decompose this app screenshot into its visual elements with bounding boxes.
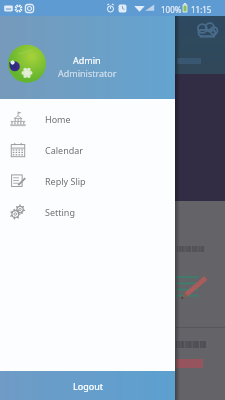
button[interactable]: Setting [0, 196, 175, 227]
button[interactable]: Reply Slip [0, 165, 175, 196]
staticText: Setting [45, 206, 75, 218]
button[interactable]: Home [0, 103, 175, 134]
staticText: Admin [73, 54, 101, 66]
staticText: 11:15 [191, 4, 212, 15]
staticText: Administrator [58, 67, 117, 79]
staticText: Calendar [45, 144, 83, 156]
staticText: Reply Slip [45, 175, 86, 187]
button[interactable]: Calendar [0, 134, 175, 165]
staticText: Logout [73, 380, 103, 392]
staticText: 100% [161, 4, 182, 15]
button[interactable]: Logout [0, 371, 175, 400]
staticText: Home [45, 113, 71, 125]
